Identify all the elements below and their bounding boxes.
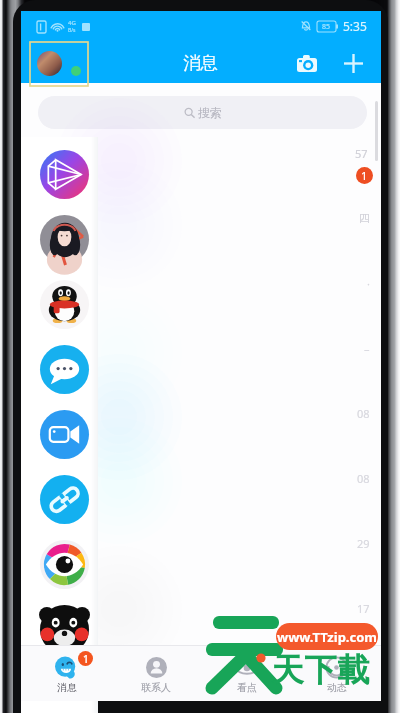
staticText: · (367, 276, 370, 291)
button[interactable]: Quick contact 6 (21, 532, 98, 597)
button[interactable]: Profile (30, 42, 88, 86)
button[interactable]: Quick contact 5 (21, 467, 98, 532)
staticText: 看点 (237, 681, 257, 694)
staticText: 17 (357, 601, 370, 616)
button[interactable]: www.TTzip.com (276, 623, 378, 650)
staticText: 85 (322, 22, 331, 32)
button[interactable]: 搜索 (38, 96, 367, 129)
button[interactable]: 看点 (201, 646, 291, 701)
button[interactable]: 动态 (291, 646, 381, 701)
staticText: 动态 (327, 681, 347, 694)
staticText: – (364, 341, 370, 356)
button[interactable]: Quick contact 7 (21, 597, 98, 662)
staticText: 08 (357, 471, 370, 486)
staticText: 1 (361, 168, 368, 183)
staticText: 联系人 (141, 681, 171, 694)
staticText: 08 (357, 406, 370, 421)
staticText: 消息 (57, 681, 77, 694)
button[interactable]: Quick contact 3 (21, 337, 98, 402)
button[interactable]: 四 (21, 202, 381, 267)
staticText: 4G (68, 19, 76, 27)
staticText: 搜索 (198, 105, 222, 120)
button[interactable]: 29 (21, 527, 381, 592)
staticText: 1 (83, 652, 89, 666)
button[interactable]: Quick contact 0 (21, 142, 98, 207)
button[interactable]: · (21, 267, 381, 332)
button[interactable]: Quick contact 2 (21, 272, 98, 337)
button[interactable]: 57 (21, 137, 381, 202)
staticText: www.TTzip.com (277, 628, 378, 646)
staticText: 天下載 (271, 650, 370, 690)
staticText: 57 (355, 146, 368, 161)
button[interactable]: – (21, 332, 381, 397)
button[interactable]: Add (339, 49, 367, 77)
button[interactable]: Quick contact 1 (21, 207, 98, 272)
staticText: B/s (68, 27, 76, 34)
button[interactable]: 联系人 (111, 646, 201, 701)
button[interactable]: Quick contact 4 (21, 402, 98, 467)
staticText: 消息 (183, 52, 218, 74)
button[interactable]: Camera (293, 49, 321, 77)
staticText: 四 (359, 211, 370, 225)
button[interactable]: 17 (21, 592, 381, 657)
button[interactable]: 08 (21, 397, 381, 462)
staticText: 5:35 (343, 18, 367, 34)
button[interactable]: 08 (21, 462, 381, 527)
button[interactable]: 消息 (21, 646, 111, 701)
staticText: 29 (357, 536, 370, 551)
